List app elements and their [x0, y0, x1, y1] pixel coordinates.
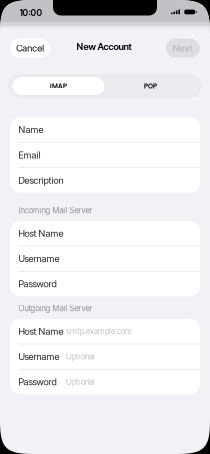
button[interactable]: POP [104, 77, 196, 95]
staticText: Password [18, 376, 56, 388]
button[interactable]: Cancel [10, 39, 50, 58]
button[interactable]: Email [10, 143, 200, 167]
staticText: IMAP [50, 82, 67, 90]
staticText: Email [18, 149, 40, 161]
staticText: smtp.example.com [66, 326, 132, 336]
staticText: Username [18, 253, 59, 264]
staticText: Password [18, 278, 56, 290]
staticText: POP [144, 82, 157, 90]
button[interactable]: Username [10, 344, 200, 369]
staticText: Description [18, 175, 63, 186]
staticText: Outgoing Mail Server [18, 303, 92, 313]
button[interactable]: Name [10, 117, 200, 142]
staticText: Next [173, 43, 193, 54]
staticText: Optional [66, 352, 95, 361]
button[interactable]: Host Name [10, 221, 200, 246]
staticText: New Account [76, 41, 131, 52]
staticText: Cancel [16, 43, 44, 54]
button[interactable]: Host Name [10, 319, 200, 344]
staticText: Username [18, 351, 59, 362]
staticText: Host Name [18, 228, 63, 239]
button[interactable]: Password [10, 272, 200, 296]
staticText: Host Name [18, 326, 63, 337]
staticText: Incoming Mail Server [18, 205, 92, 215]
button[interactable]: IMAP [12, 77, 104, 95]
staticText: Optional [66, 377, 95, 387]
button[interactable]: Next [166, 39, 200, 58]
button[interactable]: Username [10, 246, 200, 271]
staticText: 10:00 [20, 7, 43, 18]
button[interactable]: Description [10, 168, 200, 193]
button[interactable]: Password [10, 370, 200, 394]
staticText: Name [18, 124, 43, 135]
